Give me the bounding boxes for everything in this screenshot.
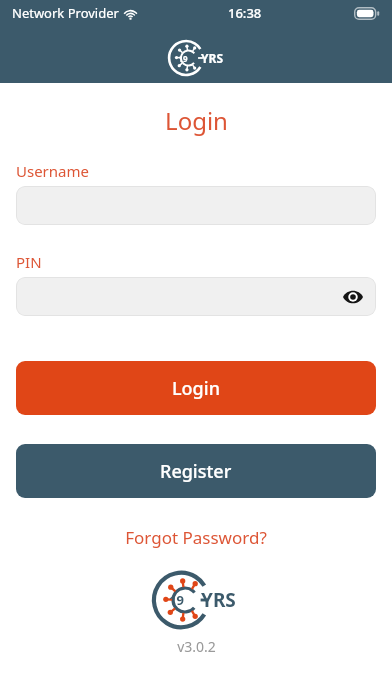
other: Battery: [354, 7, 380, 20]
staticText: Username: [16, 161, 89, 181]
staticText: PIN: [16, 252, 42, 272]
other: C19-YRS logo: [169, 40, 223, 76]
button[interactable]: [16, 186, 376, 225]
button[interactable]: Login: [16, 361, 376, 415]
staticText: v3.0.2: [177, 637, 216, 656]
button[interactable]: Show PIN: [341, 285, 365, 309]
button[interactable]: Forgot Password?: [16, 526, 376, 549]
button[interactable]: Register: [16, 444, 376, 498]
other: Wi-Fi: [124, 7, 137, 20]
staticText: Login: [165, 104, 228, 137]
staticText: YRS: [201, 587, 236, 613]
staticText: 19: [178, 53, 188, 64]
button[interactable]: Show PIN: [16, 277, 376, 316]
staticText: 16:38: [228, 4, 262, 22]
staticText: Login: [172, 376, 220, 401]
staticText: 19: [169, 591, 184, 609]
staticText: Network Provider: [12, 4, 119, 22]
staticText: YRS: [201, 50, 223, 66]
staticText: Register: [160, 459, 232, 484]
other: C19-YRS logo: [156, 571, 236, 629]
staticText: Forgot Password?: [125, 526, 267, 549]
